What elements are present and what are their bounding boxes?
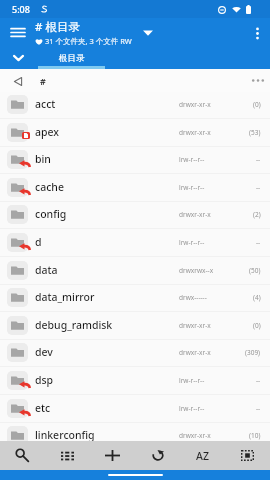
button[interactable]: data_mirror [0,284,270,311]
button[interactable]: Expand [8,48,28,68]
staticText: AZ [196,449,209,463]
button[interactable]: dev [0,339,270,366]
button[interactable]: 根目录 [38,47,105,69]
staticText: d [35,235,42,249]
staticText: 31 个文件夹, 3 个文件 RW [45,36,132,46]
staticText: lrw-r--r-- [179,155,205,164]
staticText: cache [35,180,64,194]
staticText: drwxr-xr-x [179,431,211,440]
button[interactable]: debug_ramdisk [0,312,270,339]
staticText: config [35,207,67,221]
staticText: # [40,75,46,87]
button[interactable]: Add [90,441,135,470]
staticText: lrw-r--r-- [179,376,205,385]
staticText: (4) [253,293,261,302]
staticText: (50) [249,266,261,275]
staticText: bin [35,152,51,166]
staticText: debug_ramdisk [35,318,113,332]
staticText: drwxr-xr-x [179,100,211,109]
button[interactable]: d [0,229,270,256]
button[interactable]: View mode [45,441,90,470]
staticText: data [35,263,58,277]
staticText: data_mirror [35,290,95,304]
button[interactable]: Refresh [135,441,180,470]
button[interactable]: Navigation menu [4,19,32,47]
staticText: drwxr-xr-x [179,210,211,219]
staticText: dsp [35,373,54,387]
button[interactable]: More options [244,20,270,46]
button[interactable]: Select [225,441,270,470]
staticText: (0) [253,100,261,109]
staticText: -- [256,376,261,385]
staticText: drwxr-xr-x [179,348,211,357]
staticText: (53) [249,128,261,137]
button[interactable]: dsp [0,367,270,394]
staticText: lrw-r--r-- [179,238,205,247]
staticText: dev [35,345,53,359]
staticText: etc [35,401,51,415]
staticText: acct [35,97,56,111]
button[interactable]: Sort [180,441,225,470]
staticText: drwxr-xr-x [179,321,211,330]
staticText: (10) [249,431,261,440]
staticText: -- [256,238,261,247]
staticText: (309) [245,348,261,357]
staticText: lrw-r--r-- [179,183,205,192]
button[interactable]: apex [0,119,270,146]
staticText: 根目录 [59,53,85,64]
staticText: drwxrwx--x [179,266,214,275]
button[interactable]: Search [0,441,45,470]
button[interactable]: config [0,201,270,228]
button[interactable]: Path options [246,69,270,92]
staticText: (0) [253,321,261,330]
staticText: # 根目录 [35,19,80,35]
staticText: lrw-r--r-- [179,404,205,413]
staticText: drwxr-xr-x [179,128,211,137]
button[interactable]: etc [0,395,270,422]
staticText: 5:08 [12,3,30,15]
staticText: -- [256,183,261,192]
button[interactable]: cache [0,174,270,201]
staticText: drwx------ [179,293,207,302]
staticText: (2) [253,210,261,219]
staticText: -- [256,404,261,413]
staticText: -- [256,155,261,164]
staticText: linkerconfig [35,428,95,442]
button[interactable]: Up one level [9,72,27,90]
button[interactable]: bin [0,146,270,173]
staticText: apex [35,125,60,139]
button[interactable]: acct [0,91,270,118]
button[interactable]: data [0,257,270,284]
button[interactable]: linkerconfig [0,422,270,449]
